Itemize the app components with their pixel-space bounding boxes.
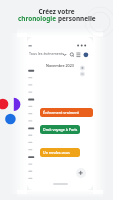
button[interactable]: Tous les évènements... <box>29 51 67 56</box>
staticText: chronologie <box>18 14 58 23</box>
staticText: Novembre 2023 <box>27 63 93 68</box>
staticText: Un rendez-vous <box>43 150 70 155</box>
staticText: personnelle <box>58 14 96 23</box>
button[interactable]: Add event <box>76 168 86 178</box>
button[interactable]: Événement vraiment important <box>40 108 93 117</box>
staticText: Créez votre <box>38 7 75 16</box>
button[interactable]: Un rendez-vous <box>40 148 80 157</box>
staticText: Tous les évènements... <box>29 51 67 56</box>
button[interactable]: Droit voyage à Paris <box>40 125 80 134</box>
staticText: Événement vraiment important <box>43 110 93 115</box>
staticText: Droit voyage à Paris <box>43 127 78 132</box>
